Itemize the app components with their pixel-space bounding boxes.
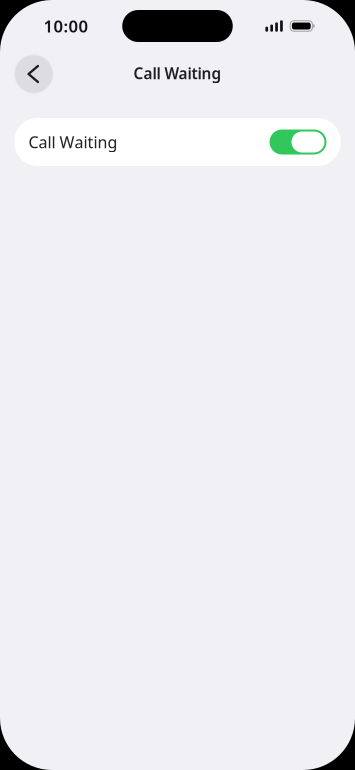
staticText: 10:00	[44, 15, 89, 37]
button[interactable]: Back	[14, 55, 53, 93]
button[interactable]: Call Waiting, on	[269, 129, 326, 154]
staticText: Call Waiting	[28, 131, 117, 153]
staticText: Call Waiting	[133, 63, 221, 84]
button[interactable]: Call Waiting	[14, 118, 340, 166]
